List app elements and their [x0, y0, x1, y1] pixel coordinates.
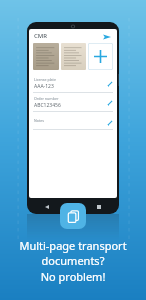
staticText: ABC123456 [34, 102, 61, 109]
button[interactable]: Recents [93, 201, 105, 213]
button[interactable]: Add page [88, 43, 113, 70]
button[interactable]: Multi-page documents [60, 203, 86, 229]
button[interactable]: Send [101, 31, 112, 42]
button[interactable]: Document page [33, 43, 59, 70]
staticText: CMR [34, 32, 48, 40]
button[interactable]: Document page [61, 43, 86, 70]
staticText: Notes [34, 118, 44, 123]
button[interactable]: Home [67, 201, 79, 213]
button[interactable]: Order number [29, 93, 117, 111]
button[interactable]: Notes [29, 115, 117, 129]
staticText: Order number [34, 96, 59, 101]
button[interactable]: Back [41, 201, 53, 213]
staticText: Multi-page transport documents? [0, 238, 146, 268]
staticText: AAA-123 [34, 83, 54, 90]
button[interactable]: License plate [29, 74, 117, 92]
staticText: License plate [34, 77, 56, 82]
staticText: No problem! [0, 269, 146, 284]
